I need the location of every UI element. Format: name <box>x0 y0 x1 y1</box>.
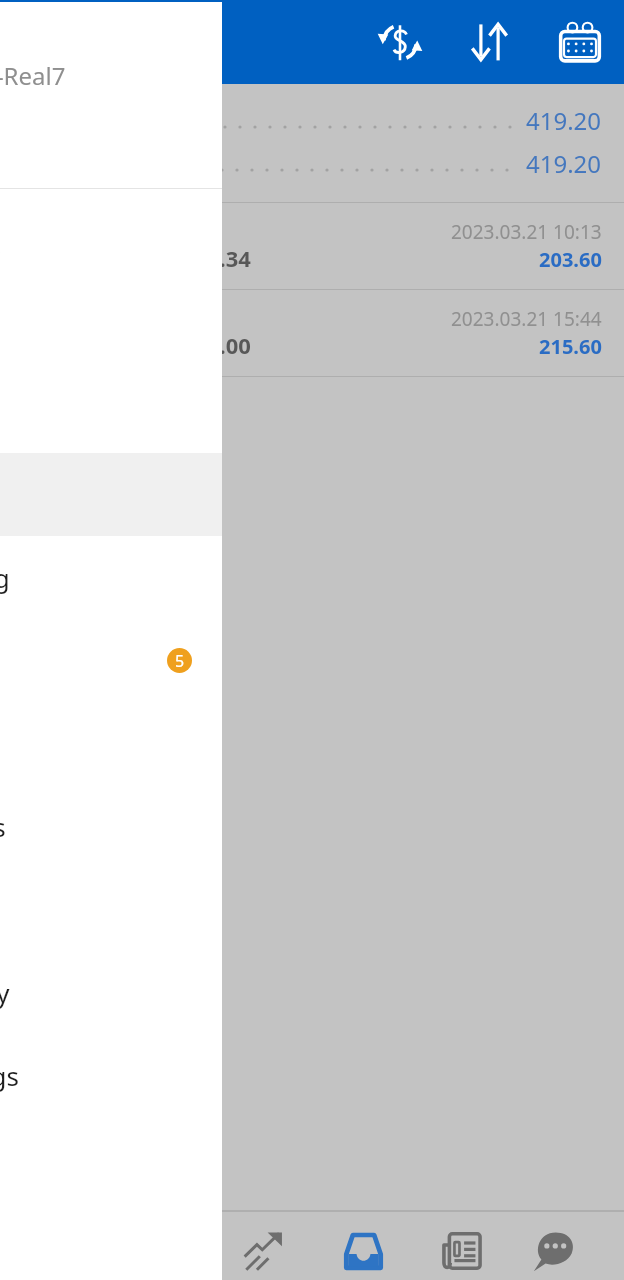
button[interactable]: Quotes <box>214 1221 312 1280</box>
staticText: Settings <box>0 1058 19 1093</box>
button[interactable]: History <box>0 951 222 1034</box>
button[interactable]: Calendar <box>549 11 611 73</box>
button[interactable]: Sort <box>458 11 520 73</box>
button[interactable]: 2023.03.21 10:13 <box>0 203 624 289</box>
button[interactable]: Trading <box>0 536 222 619</box>
button[interactable]: Trade <box>314 1221 412 1280</box>
staticText: Trading <box>0 560 10 595</box>
staticText: Quotes <box>0 809 6 844</box>
staticText: 5 <box>175 650 185 672</box>
staticText: 0.00 <box>207 330 251 360</box>
staticText: 215.60 <box>539 333 602 360</box>
button[interactable]: News <box>413 1221 511 1280</box>
staticText: RoboForex-Real7 <box>0 59 66 92</box>
staticText: 419.20 <box>526 104 602 137</box>
staticText: History <box>0 975 10 1010</box>
button[interactable]: 2023.03.21 15:44 <box>0 290 624 376</box>
button[interactable]: Quotes <box>0 785 222 868</box>
staticText: 2023.03.21 10:13 <box>451 219 602 245</box>
button[interactable]: Settings <box>0 1034 222 1117</box>
staticText: 2.34 <box>207 243 251 273</box>
staticText: 419.20 <box>526 147 602 180</box>
button[interactable]: Currency <box>369 11 431 73</box>
button[interactable]: Chat <box>505 1221 603 1280</box>
staticText: 2023.03.21 15:44 <box>451 306 602 332</box>
button[interactable]: Mailbox <box>0 619 222 702</box>
staticText: 203.60 <box>539 246 602 273</box>
